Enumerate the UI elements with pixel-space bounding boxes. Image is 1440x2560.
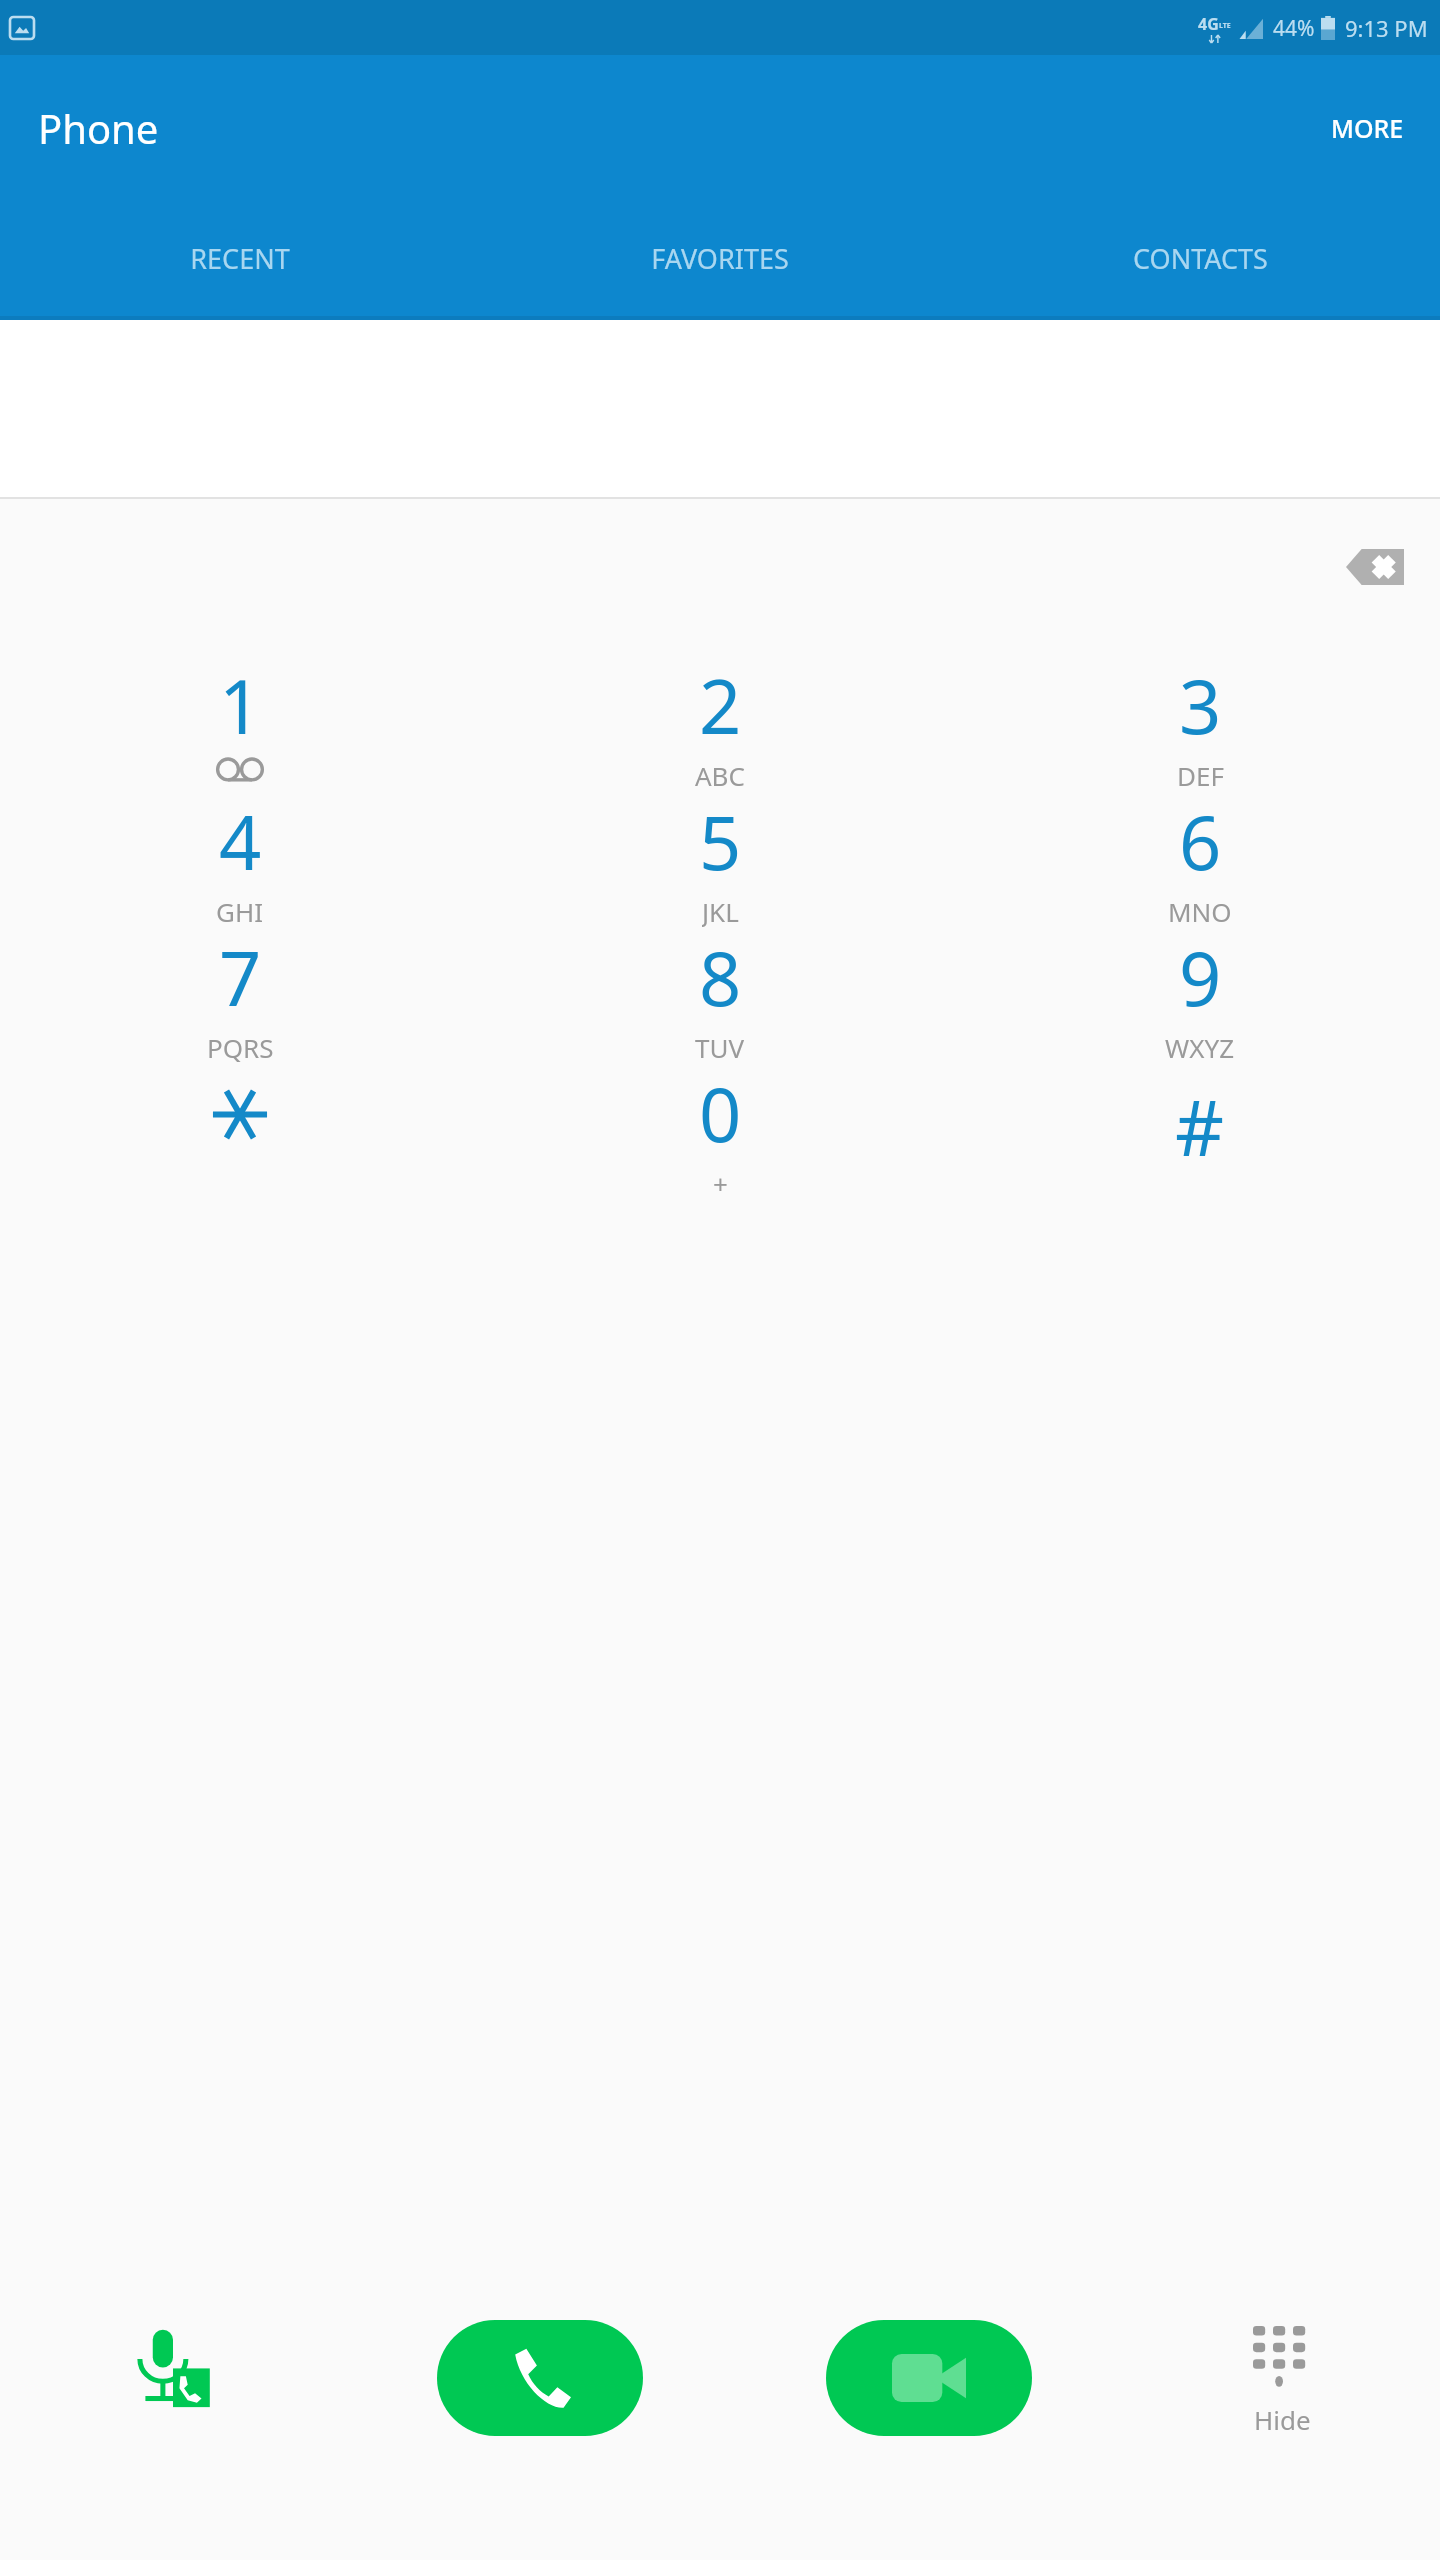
staticText: 4 xyxy=(219,791,262,892)
staticText: # xyxy=(1175,1075,1225,1179)
button[interactable]: RECENT xyxy=(0,200,480,316)
staticText: GHI xyxy=(216,894,264,927)
button[interactable]: Hide xyxy=(1123,2298,1440,2560)
staticText: MNO xyxy=(1168,894,1232,927)
staticText: WXYZ xyxy=(1165,1030,1235,1063)
button[interactable]: 5 xyxy=(480,791,960,927)
staticText: Hide xyxy=(1254,2402,1311,2437)
staticText: 0 xyxy=(699,1063,742,1164)
button[interactable]: Video call xyxy=(826,2320,1032,2436)
button[interactable]: 9 xyxy=(960,927,1440,1063)
button[interactable]: Call xyxy=(437,2320,643,2436)
staticText: 1 xyxy=(219,655,262,756)
staticText: Phone xyxy=(38,101,159,155)
button[interactable]: 1 xyxy=(0,655,480,791)
staticText: MORE xyxy=(1331,111,1404,145)
staticText: PQRS xyxy=(207,1030,274,1063)
staticText: 9:13 PM xyxy=(1345,13,1428,43)
staticText: 44% xyxy=(1273,14,1315,43)
button[interactable]: Backspace xyxy=(1332,535,1418,599)
staticText: 3 xyxy=(1179,655,1222,756)
staticText: 7 xyxy=(219,927,262,1028)
button[interactable]: 4 xyxy=(0,791,480,927)
button[interactable]: FAVORITES xyxy=(480,200,960,316)
button[interactable]: 0 xyxy=(480,1063,960,1199)
staticText: JKL xyxy=(702,894,739,927)
button[interactable]: 6 xyxy=(960,791,1440,927)
staticText: ABC xyxy=(695,758,745,791)
staticText: 8 xyxy=(699,927,742,1028)
staticText: RECENT xyxy=(190,240,290,277)
staticText: FAVORITES xyxy=(651,240,789,277)
staticText: 5 xyxy=(699,791,742,892)
button[interactable]: MORE xyxy=(1295,89,1440,167)
button[interactable]: 7 xyxy=(0,927,480,1063)
staticText: CONTACTS xyxy=(1133,240,1268,277)
staticText: DEF xyxy=(1177,758,1224,791)
staticText: 9 xyxy=(1179,927,1222,1028)
button[interactable]: # xyxy=(960,1063,1440,1199)
staticText: LTE xyxy=(1219,21,1231,31)
staticText: 6 xyxy=(1179,791,1222,892)
button[interactable]: 3 xyxy=(960,655,1440,791)
button[interactable]: Voice call xyxy=(0,2298,345,2560)
button[interactable] xyxy=(0,1063,480,1199)
staticText: TUV xyxy=(695,1030,745,1063)
staticText: 2 xyxy=(699,655,742,756)
button[interactable]: 8 xyxy=(480,927,960,1063)
button[interactable]: CONTACTS xyxy=(960,200,1440,316)
staticText: 4G xyxy=(1198,13,1219,35)
staticText: + xyxy=(713,1166,728,1199)
button[interactable]: 2 xyxy=(480,655,960,791)
